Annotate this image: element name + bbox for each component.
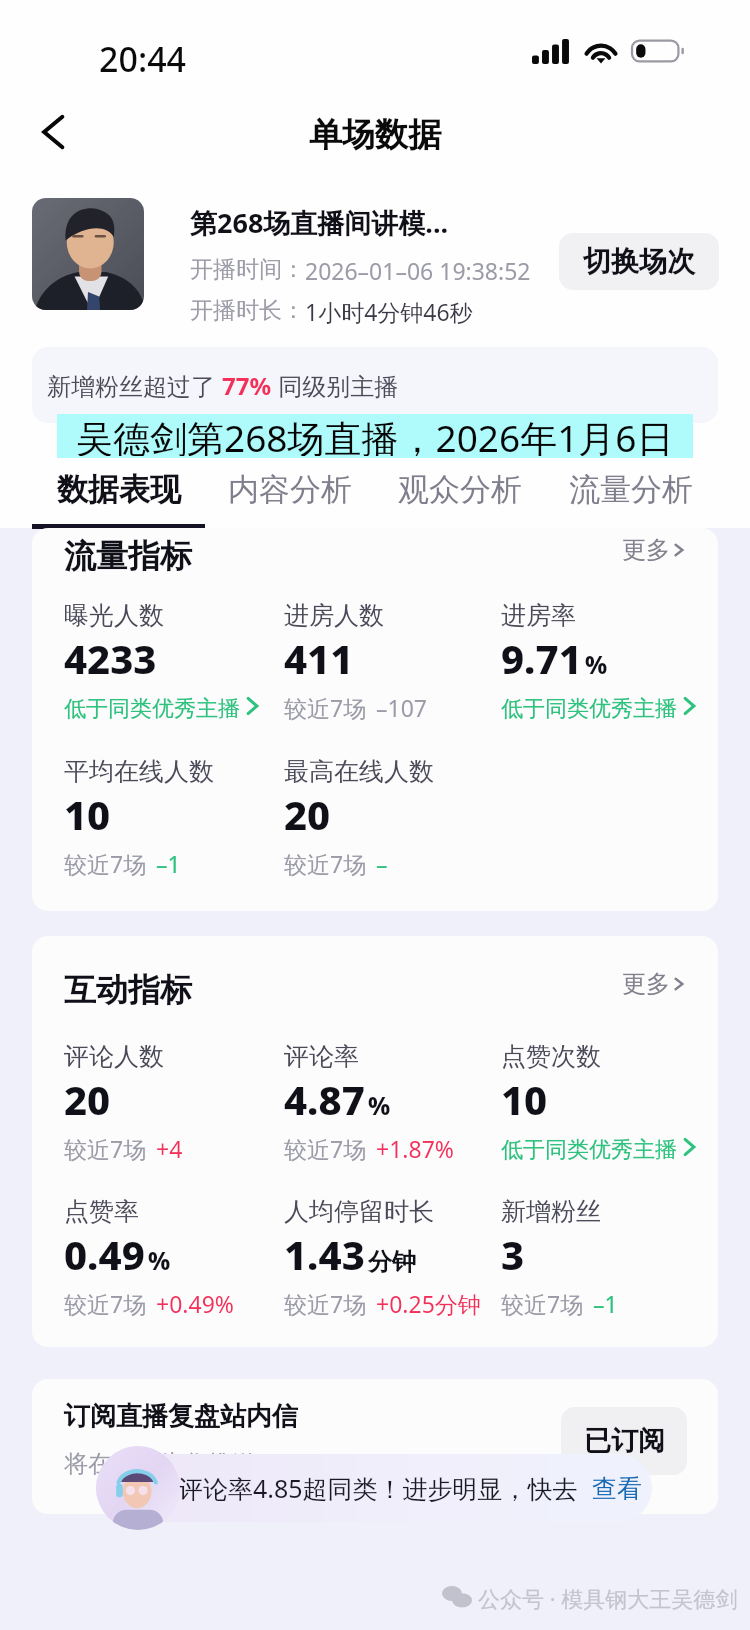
staticText: 第268场直播间讲模... — [190, 204, 449, 241]
button[interactable]: 点赞率 — [64, 1196, 284, 1319]
staticText: 评论率4.85超同类！进步明显，快去 — [178, 1471, 578, 1505]
button[interactable]: 点赞次数 — [501, 1041, 718, 1161]
staticText: 411 — [284, 631, 354, 685]
button[interactable]: 评论率4.85超同类！进步明显，快去 — [96, 1454, 652, 1522]
button[interactable]: 观众分析 — [389, 462, 530, 516]
staticText: 点赞次数 — [501, 1041, 601, 1072]
staticText: 4233 — [64, 631, 157, 685]
staticText: 20:44 — [99, 36, 187, 82]
staticText: 进房率 — [501, 600, 576, 631]
staticText: 新增粉丝 — [501, 1196, 601, 1227]
staticText: 低于同类优秀主播 — [501, 1136, 677, 1164]
staticText: –1 — [593, 1288, 618, 1319]
button[interactable]: 新增粉丝超过了 — [32, 347, 718, 423]
staticText: 人均停留时长 — [284, 1196, 434, 1227]
button[interactable]: 新增粉丝 — [501, 1196, 718, 1319]
staticText: 曝光人数 — [64, 600, 164, 631]
staticText: 4.87 — [284, 1072, 365, 1126]
staticText: 较近7场 — [284, 1288, 367, 1319]
staticText: 2026–01–06 19:38:52 — [305, 255, 531, 286]
staticText: 较近7场 — [64, 1133, 147, 1164]
staticText: 较近7场 — [64, 848, 147, 879]
button[interactable]: 最高在线人数 — [284, 756, 504, 879]
staticText: 3 — [501, 1227, 525, 1281]
staticText: 数据表现 — [57, 470, 181, 509]
staticText: 将在次日为您推送 — [64, 1449, 256, 1479]
staticText: 较近7场 — [501, 1288, 584, 1319]
staticText: 较近7场 — [284, 692, 367, 723]
staticText: 新增粉丝超过了 — [47, 369, 222, 402]
button[interactable]: 切换场次 — [559, 233, 719, 290]
button[interactable]: 数据表现 — [32, 462, 205, 516]
button[interactable]: 人均停留时长 — [284, 1196, 504, 1319]
button[interactable]: 内容分析 — [219, 462, 360, 516]
staticText: 互动指标 — [64, 970, 192, 1010]
staticText: 流量分析 — [569, 470, 693, 509]
staticText: 分钟 — [368, 1247, 416, 1277]
staticText: +0.49% — [156, 1288, 234, 1319]
button[interactable]: 平均在线人数 — [64, 756, 284, 879]
staticText: +4 — [156, 1133, 183, 1164]
staticText: 1.43 — [284, 1227, 365, 1281]
staticText: 评论人数 — [64, 1041, 164, 1072]
staticText: –107 — [376, 692, 427, 723]
button[interactable]: 进房率 — [501, 600, 718, 720]
staticText: 流量指标 — [64, 536, 192, 576]
button[interactable]: 返回 — [22, 103, 86, 167]
staticText: 开播时长： — [190, 296, 305, 325]
staticText: 订阅直播复盘站内信 — [64, 1400, 298, 1433]
button[interactable]: 进房人数 — [284, 600, 504, 723]
staticText: 低于同类优秀主播 — [501, 695, 677, 723]
staticText: 切换场次 — [583, 244, 695, 279]
staticText: 点赞率 — [64, 1196, 139, 1227]
staticText: 查看 — [592, 1473, 642, 1504]
staticText: 吴德剑第268场直播，2026年1月6日 — [76, 412, 674, 456]
button[interactable]: 更多 — [614, 961, 692, 1007]
staticText: 公众号 · 模具钢大王吴德剑 — [478, 1583, 738, 1613]
staticText: +1.87% — [376, 1133, 454, 1164]
staticText: 评论率 — [284, 1041, 359, 1072]
button[interactable]: 曝光人数 — [64, 600, 284, 720]
staticText: 观众分析 — [398, 470, 522, 509]
staticText: 低于同类优秀主播 — [64, 695, 240, 723]
staticText: % — [585, 648, 608, 681]
staticText: 10 — [501, 1072, 548, 1126]
button[interactable]: 流量分析 — [560, 462, 701, 516]
staticText: 0.49 — [64, 1227, 145, 1281]
staticText: 20 — [64, 1072, 111, 1126]
staticText: –1 — [156, 848, 181, 879]
staticText: 更多 — [622, 969, 670, 999]
staticText: 同级别主播 — [272, 369, 399, 402]
staticText: 内容分析 — [228, 470, 352, 509]
staticText: 20 — [284, 787, 331, 841]
staticText: 单场数据 — [309, 114, 441, 156]
staticText: % — [148, 1244, 171, 1277]
staticText: 更多 — [622, 535, 670, 565]
staticText: 较近7场 — [284, 848, 367, 879]
staticText: 10 — [64, 787, 111, 841]
button[interactable]: 评论率 — [284, 1041, 504, 1164]
staticText: 较近7场 — [64, 1288, 147, 1319]
staticText: 较近7场 — [284, 1133, 367, 1164]
staticText: % — [368, 1089, 391, 1122]
staticText: 最高在线人数 — [284, 756, 434, 787]
staticText: 已订阅 — [584, 1424, 665, 1458]
staticText: 进房人数 — [284, 600, 384, 631]
staticText: 1小时4分钟46秒 — [305, 296, 473, 327]
staticText: 9.71 — [501, 631, 582, 685]
staticText: – — [376, 848, 388, 879]
staticText: 开播时间： — [190, 255, 305, 284]
staticText: 平均在线人数 — [64, 756, 214, 787]
button[interactable]: 已订阅 — [561, 1407, 687, 1475]
staticText: +0.25分钟 — [376, 1288, 481, 1319]
button[interactable]: 评论人数 — [64, 1041, 284, 1164]
staticText: 77% — [222, 369, 272, 402]
button[interactable]: 更多 — [614, 528, 692, 573]
